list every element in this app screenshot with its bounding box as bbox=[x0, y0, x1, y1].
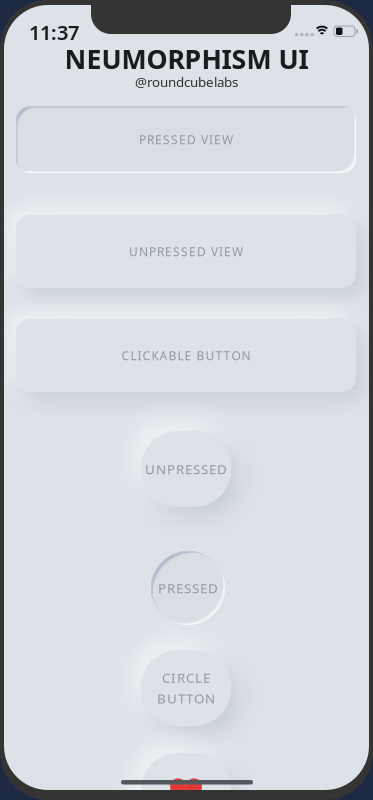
staticText: B U T T O N bbox=[157, 689, 215, 707]
button[interactable]: U N P R E S S E D V I E W bbox=[16, 215, 356, 288]
staticText: P R E S S E D bbox=[158, 579, 218, 597]
button[interactable]: P R E S S E D V I E W bbox=[16, 106, 356, 173]
staticText: C I R C L E bbox=[162, 669, 210, 686]
button[interactable]: P R E S S E D bbox=[151, 551, 225, 625]
button[interactable]: U N P R E S S E D bbox=[141, 431, 231, 507]
staticText: @roundcubelabs bbox=[135, 73, 238, 91]
staticText: U N P R E S S E D V I E W bbox=[129, 243, 243, 259]
button[interactable]: C I R C L E bbox=[141, 650, 231, 726]
staticText: 11:37 bbox=[29, 19, 79, 46]
staticText: C L I C K A B L E B U T T O N bbox=[121, 347, 250, 363]
staticText: NEUMORPHISM UI bbox=[64, 41, 308, 76]
button[interactable]: C L I C K A B L E B U T T O N bbox=[16, 319, 356, 392]
button[interactable] bbox=[141, 753, 231, 800]
staticText: P R E S S E D V I E W bbox=[139, 131, 233, 147]
staticText: U N P R E S S E D bbox=[145, 460, 227, 478]
